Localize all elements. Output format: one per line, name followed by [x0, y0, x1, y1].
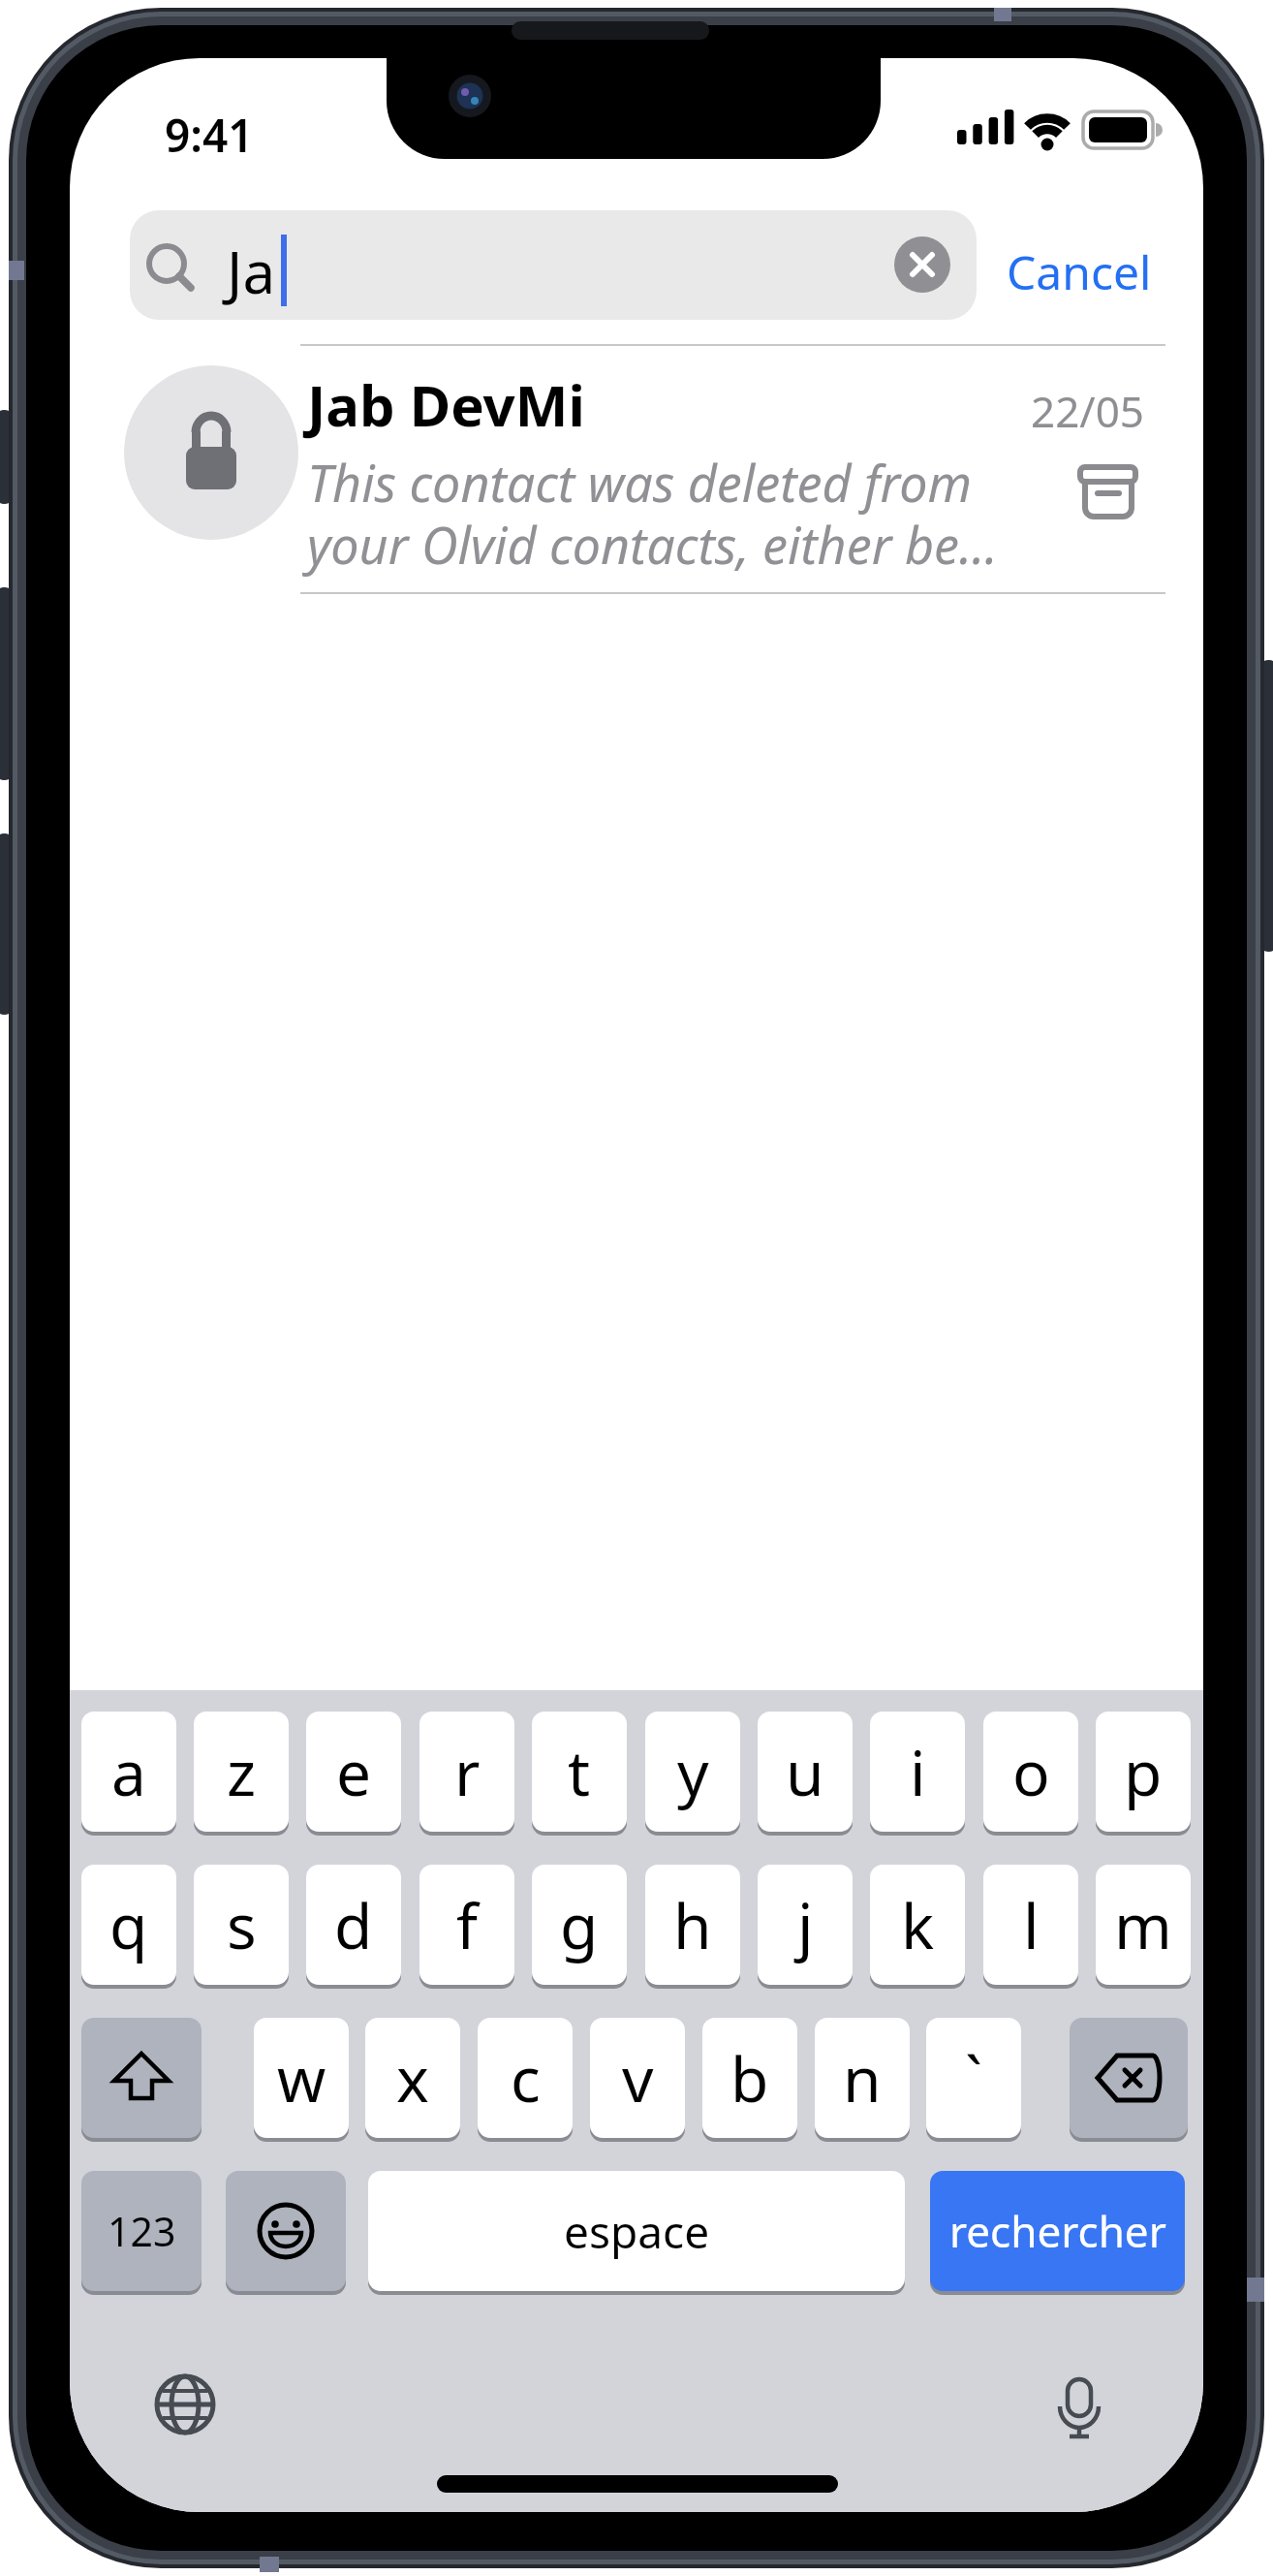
- staticText: 22/05: [1031, 382, 1145, 440]
- button[interactable]: x: [365, 2018, 460, 2138]
- staticText: v: [622, 2036, 654, 2120]
- button[interactable]: b: [702, 2018, 797, 2138]
- button[interactable]: [226, 2171, 346, 2291]
- button[interactable]: l: [983, 1865, 1078, 1985]
- button[interactable]: n: [815, 2018, 910, 2138]
- button[interactable]: q: [81, 1865, 176, 1985]
- button[interactable]: z: [194, 1712, 289, 1832]
- button[interactable]: [1070, 2018, 1188, 2138]
- staticText: y: [677, 1730, 709, 1814]
- staticText: o: [1012, 1730, 1050, 1814]
- staticText: p: [1124, 1730, 1163, 1814]
- staticText: g: [560, 1883, 599, 1967]
- staticText: c: [511, 2036, 541, 2120]
- staticText: espace: [564, 2201, 710, 2262]
- staticText: u: [786, 1730, 824, 1814]
- button[interactable]: [156, 2375, 214, 2434]
- button[interactable]: Ja: [130, 210, 977, 320]
- staticText: This contact was deleted from: [307, 448, 972, 517]
- button[interactable]: d: [306, 1865, 401, 1985]
- staticText: h: [673, 1883, 712, 1967]
- staticText: e: [336, 1730, 372, 1814]
- staticText: d: [334, 1883, 373, 1967]
- button[interactable]: r: [419, 1712, 514, 1832]
- staticText: r: [454, 1730, 481, 1814]
- staticText: Cancel: [1007, 240, 1152, 303]
- staticText: a: [111, 1730, 146, 1814]
- button[interactable]: [894, 236, 950, 293]
- staticText: x: [396, 2036, 429, 2120]
- button[interactable]: g: [532, 1865, 627, 1985]
- button[interactable]: [1050, 2377, 1108, 2439]
- button[interactable]: h: [645, 1865, 740, 1985]
- button[interactable]: w: [254, 2018, 349, 2138]
- button[interactable]: t: [532, 1712, 627, 1832]
- staticText: w: [277, 2036, 326, 2120]
- staticText: m: [1114, 1883, 1172, 1967]
- staticText: i: [910, 1730, 926, 1814]
- button[interactable]: c: [478, 2018, 573, 2138]
- staticText: 9:41: [165, 105, 254, 166]
- staticText: rechercher: [949, 2202, 1166, 2260]
- staticText: j: [797, 1883, 814, 1967]
- button[interactable]: [81, 2018, 202, 2138]
- staticText: 123: [108, 2204, 176, 2258]
- staticText: q: [109, 1883, 148, 1967]
- staticText: l: [1023, 1883, 1040, 1967]
- button[interactable]: y: [645, 1712, 740, 1832]
- button[interactable]: k: [870, 1865, 965, 1985]
- staticText: k: [901, 1883, 935, 1967]
- button[interactable]: m: [1096, 1865, 1191, 1985]
- button[interactable]: Cancel: [1000, 233, 1155, 300]
- button[interactable]: p: [1096, 1712, 1191, 1832]
- button[interactable]: v: [590, 2018, 685, 2138]
- staticText: Ja: [227, 232, 276, 311]
- button[interactable]: a: [81, 1712, 176, 1832]
- button[interactable]: espace: [368, 2171, 905, 2291]
- button[interactable]: u: [758, 1712, 853, 1832]
- button[interactable]: rechercher: [930, 2171, 1185, 2291]
- staticText: f: [456, 1883, 479, 1967]
- staticText: b: [730, 2036, 769, 2120]
- button[interactable]: f: [419, 1865, 514, 1985]
- button[interactable]: e: [306, 1712, 401, 1832]
- staticText: s: [227, 1883, 257, 1967]
- staticText: t: [568, 1730, 591, 1814]
- staticText: `: [965, 2036, 982, 2120]
- button[interactable]: o: [983, 1712, 1078, 1832]
- staticText: z: [227, 1730, 257, 1814]
- button[interactable]: s: [194, 1865, 289, 1985]
- staticText: n: [843, 2036, 882, 2120]
- button[interactable]: [70, 346, 1203, 593]
- button[interactable]: `: [926, 2018, 1021, 2138]
- button[interactable]: i: [870, 1712, 965, 1832]
- staticText: Jab DevMi: [307, 366, 585, 443]
- button[interactable]: 123: [81, 2171, 202, 2291]
- staticText: your Olvid contacts, either be...: [307, 510, 998, 579]
- button[interactable]: j: [758, 1865, 853, 1985]
